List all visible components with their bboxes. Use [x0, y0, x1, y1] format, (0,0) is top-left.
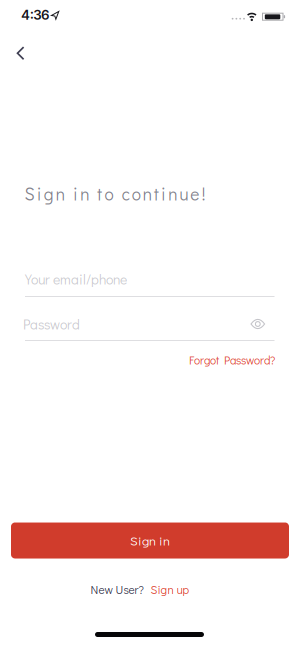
staticText: Forgot Password?: [189, 352, 275, 367]
button[interactable]: Sign in: [11, 522, 289, 558]
staticText: New User?: [90, 582, 143, 597]
staticText: Your email/phone: [25, 270, 127, 288]
button[interactable]: Back: [7, 39, 35, 67]
staticText: Sign in: [130, 532, 170, 549]
button[interactable]: Sign up: [150, 582, 189, 597]
button[interactable]: Show password: [248, 316, 268, 332]
staticText: 4:36: [21, 7, 50, 23]
staticText: Sign up: [150, 582, 189, 597]
staticText: Sign in to continue!: [25, 182, 205, 205]
staticText: Password: [23, 315, 80, 333]
button[interactable]: Forgot Password?: [189, 352, 275, 367]
